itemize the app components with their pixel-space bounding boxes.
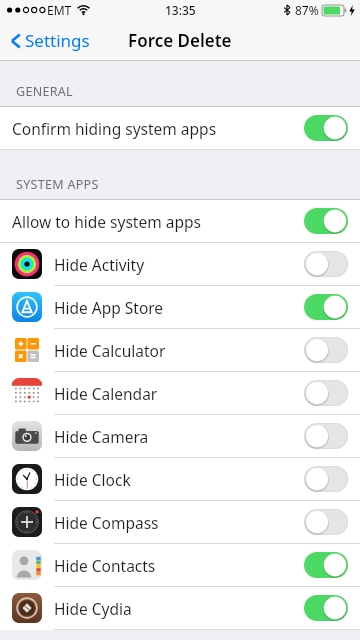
staticText: Hide Contacts <box>54 555 304 576</box>
staticText: Hide Calendar <box>54 383 304 404</box>
staticText: 13:35 <box>165 2 196 18</box>
button[interactable]: Allow to hide system apps <box>0 200 360 243</box>
button[interactable]: Hide Activity <box>0 243 360 286</box>
staticText: EMT <box>47 2 72 18</box>
button[interactable]: Hide App Store <box>0 286 360 329</box>
staticText: SYSTEM APPS <box>16 176 99 193</box>
button[interactable]: Hide Calculator <box>0 329 360 372</box>
staticText: Confirm hiding system apps <box>12 118 304 139</box>
staticText: Hide Camera <box>54 426 304 447</box>
staticText: Hide Cydia <box>54 598 304 619</box>
button[interactable]: Hide Clock <box>0 458 360 501</box>
staticText: Hide Compass <box>54 512 304 533</box>
button[interactable]: Hide Camera <box>0 415 360 458</box>
staticText: Force Delete <box>128 29 232 52</box>
staticText: Hide App Store <box>54 297 304 318</box>
button[interactable]: Confirm hiding system apps <box>0 107 360 150</box>
staticText: Hide Clock <box>54 469 304 490</box>
staticText: 87% <box>295 2 319 18</box>
staticText: Settings <box>25 29 90 52</box>
staticText: Hide Calculator <box>54 340 304 361</box>
button[interactable]: Hide Compass <box>0 501 360 544</box>
staticText: GENERAL <box>16 83 73 100</box>
button[interactable]: Hide Calendar <box>0 372 360 415</box>
button[interactable]: Settings <box>6 25 94 56</box>
button[interactable]: Hide Cydia <box>0 587 360 630</box>
staticText: Hide Activity <box>54 254 304 275</box>
button[interactable]: Hide Contacts <box>0 544 360 587</box>
staticText: Allow to hide system apps <box>12 211 304 232</box>
